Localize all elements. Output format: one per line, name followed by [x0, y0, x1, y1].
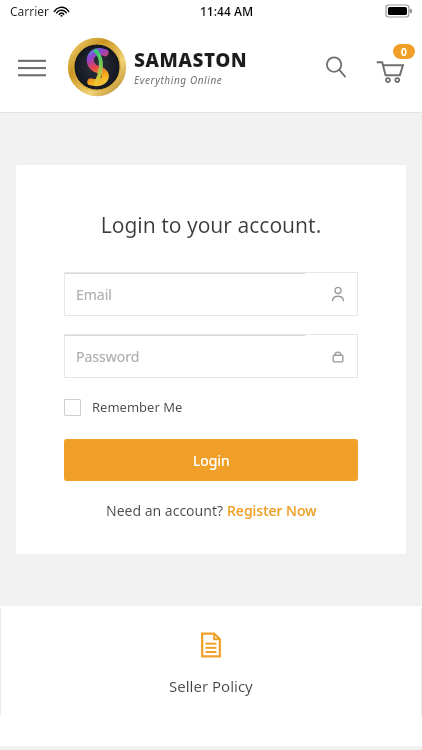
staticText: Login	[193, 451, 230, 470]
button[interactable]: Password	[64, 334, 358, 378]
button[interactable]: Register Now	[227, 501, 317, 520]
staticText: Email	[76, 285, 112, 304]
staticText: Seller Policy	[169, 676, 253, 696]
button[interactable]: Login	[64, 439, 358, 481]
button[interactable]: Email	[64, 272, 358, 316]
staticText: Need an account?	[106, 501, 227, 520]
button[interactable]: Shopping cart, 0 items	[364, 41, 416, 93]
staticText: Remember Me	[92, 398, 183, 416]
button[interactable]: Open navigation menu	[8, 43, 56, 91]
staticText: Carrier	[10, 3, 50, 19]
staticText: 0	[401, 45, 407, 59]
staticText: Login to your account.	[64, 211, 358, 240]
button[interactable]: Search	[312, 43, 360, 91]
staticText: 11:44 AM	[200, 3, 254, 19]
staticText: Everything Online	[134, 73, 223, 87]
button[interactable]: Seller Policy	[1, 606, 421, 746]
staticText: SAMASTON	[134, 47, 247, 73]
button[interactable]: Remember Me	[64, 394, 358, 420]
staticText: Password	[76, 347, 140, 366]
